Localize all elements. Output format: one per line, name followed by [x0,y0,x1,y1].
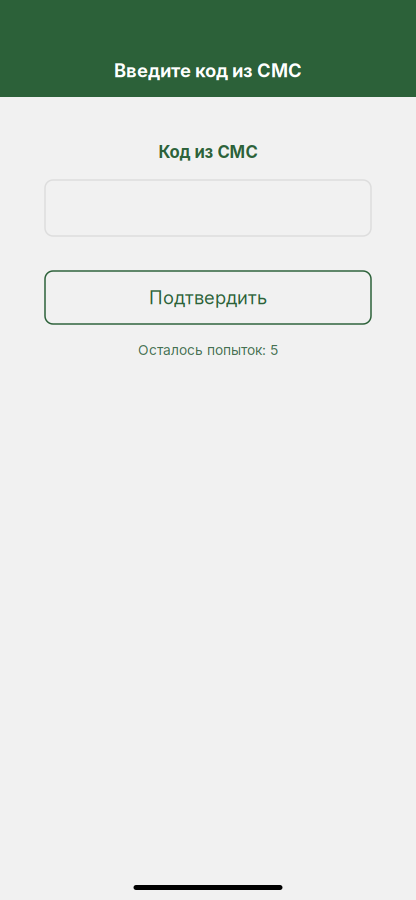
staticText: Осталось попыток: 5 [138,342,278,358]
staticText: Код из СМС [158,142,257,162]
staticText: Подтвердить [149,286,267,308]
button[interactable]: Подтвердить [45,271,371,324]
staticText: Введите код из СМС [114,59,302,82]
button[interactable]: Код из СМС [45,180,371,236]
